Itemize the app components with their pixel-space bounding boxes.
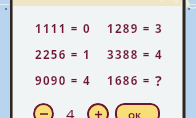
- button[interactable]: Decrease: [33, 103, 54, 118]
- staticText: 2256 = 1: [35, 47, 91, 63]
- staticText: 3388 = 4: [107, 47, 163, 63]
- staticText: 9090 = 4: [35, 73, 91, 89]
- staticText: 1686 =: [107, 73, 155, 89]
- staticText: OK: [128, 109, 142, 118]
- staticText: 4: [66, 104, 75, 118]
- button[interactable]: Increase: [87, 103, 109, 118]
- button[interactable]: OK: [115, 103, 160, 118]
- staticText: 1111 = 0: [35, 21, 91, 37]
- staticText: ?: [155, 71, 162, 90]
- staticText: 1289 = 3: [107, 21, 163, 37]
